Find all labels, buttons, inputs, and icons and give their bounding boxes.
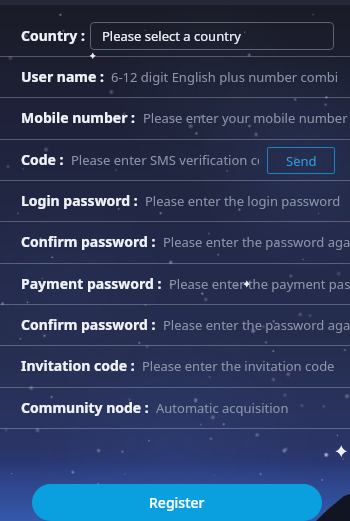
staticText: Payment password : bbox=[21, 274, 162, 293]
button[interactable]: Send bbox=[267, 147, 335, 174]
staticText: Mobile number : bbox=[21, 108, 136, 127]
button[interactable]: Code : bbox=[0, 139, 350, 180]
staticText: Please enter the login password bbox=[145, 192, 341, 210]
staticText: Please enter SMS verification code bbox=[71, 151, 259, 169]
staticText: Please enter the invitation code bbox=[142, 357, 335, 375]
staticText: Invitation code : bbox=[21, 356, 135, 375]
button[interactable]: Community node : bbox=[0, 387, 350, 428]
button[interactable]: Register bbox=[32, 484, 322, 521]
staticText: Please enter the password again bbox=[163, 316, 350, 334]
staticText: Please enter your mobile number bbox=[143, 109, 348, 127]
button[interactable]: Confirm password : bbox=[0, 304, 350, 345]
button[interactable]: Invitation code : bbox=[0, 345, 350, 386]
staticText: Send bbox=[286, 152, 317, 170]
button[interactable]: Country : bbox=[0, 15, 350, 56]
staticText: Community node : bbox=[21, 398, 149, 417]
button[interactable]: User name : bbox=[0, 56, 350, 97]
staticText: User name : bbox=[21, 67, 104, 86]
staticText: Login password : bbox=[21, 191, 138, 210]
staticText: Please select a country bbox=[102, 27, 241, 45]
staticText: 6-12 digit English plus number combi bbox=[111, 68, 339, 86]
button[interactable]: Login password : bbox=[0, 180, 350, 221]
staticText: Please enter the password again bbox=[163, 233, 350, 251]
button[interactable]: Confirm password : bbox=[0, 221, 350, 262]
button[interactable]: Mobile number : bbox=[0, 97, 350, 138]
staticText: Automatic acquisition bbox=[156, 399, 289, 417]
staticText: Country : bbox=[21, 26, 85, 45]
staticText: Please enter the payment password bbox=[169, 275, 350, 293]
staticText: Code : bbox=[21, 150, 64, 169]
staticText: Confirm password : bbox=[21, 315, 156, 334]
staticText: Register bbox=[149, 493, 205, 512]
button[interactable]: Payment password : bbox=[0, 263, 350, 304]
staticText: Confirm password : bbox=[21, 232, 156, 251]
